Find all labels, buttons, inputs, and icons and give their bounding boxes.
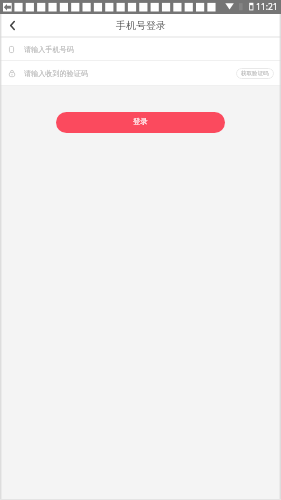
button[interactable]: 登录 [56, 112, 225, 133]
button[interactable]: 请输入手机号码 [0, 38, 281, 60]
button[interactable]: 获取验证码 [236, 68, 274, 79]
staticText: 请输入收到的验证码 [24, 69, 88, 78]
button[interactable]: 请输入收到的验证码 [0, 61, 281, 85]
button[interactable]: Back [0, 14, 24, 36]
staticText: 登录 [133, 117, 148, 126]
staticText: 请输入手机号码 [24, 45, 74, 54]
staticText: 手机号登录 [116, 19, 166, 32]
staticText: 11:21 [256, 1, 278, 13]
staticText: 获取验证码 [241, 70, 269, 77]
